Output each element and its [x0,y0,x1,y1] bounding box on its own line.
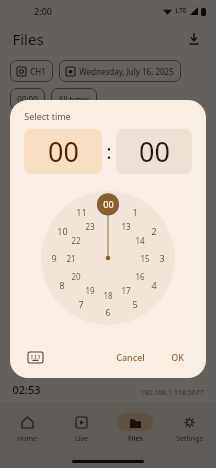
staticText: 15 [140,253,150,264]
staticText: LTE [175,6,187,16]
staticText: 20 [71,271,81,282]
staticText: Cancel [116,351,145,363]
button[interactable]: Download [184,29,204,49]
staticText: 21 [66,253,76,264]
staticText: 19 [85,285,95,296]
staticText: 13 [121,221,131,232]
button[interactable]: 21 [63,250,79,266]
staticText: 18 [103,290,113,301]
staticText: Settings [176,434,203,444]
button[interactable]: CH1 [10,60,53,82]
button[interactable]: 11 [72,203,90,221]
staticText: 23 [85,221,95,232]
button[interactable]: 1 [126,203,144,221]
button[interactable]: 4 [145,276,163,294]
button[interactable]: 7 [72,295,90,313]
staticText: 02:53 [12,382,41,397]
staticText: Live [75,434,88,444]
button[interactable]: Settings [162,411,216,446]
button[interactable]: Cancel [108,347,153,367]
button[interactable]: 23 [82,218,98,234]
button[interactable]: 00:00 [10,88,45,110]
staticText: 6 [105,306,111,318]
button[interactable]: 17 [118,282,134,298]
staticText: 1 [132,206,138,218]
button[interactable]: 6 [99,303,117,321]
staticText: Select time [24,110,71,122]
staticText: Files [128,434,143,444]
staticText: 5 [132,298,138,310]
staticText: 00 [103,198,114,210]
staticText: 2 [151,225,157,237]
staticText: 11 [76,206,87,218]
button[interactable]: 13 [118,218,134,234]
button[interactable]: 19 [82,282,98,298]
staticText: Files [12,29,44,49]
button[interactable]: 16 [132,268,148,284]
staticText: 2:00 [34,5,52,17]
staticText: 00:00 [17,94,38,105]
button[interactable]: 9 [45,249,63,267]
button[interactable]: 10 [53,222,71,240]
staticText: 192.168.1.118:5677 [140,388,204,398]
button[interactable]: 14 [132,232,148,248]
staticText: 00 [48,133,79,170]
button[interactable]: 12 [99,195,117,213]
staticText: 12 [103,198,114,210]
button[interactable]: 00 [116,129,192,174]
button[interactable]: 2 [145,222,163,240]
staticText: 10 [57,225,68,237]
button[interactable]: Live [54,411,108,446]
staticText: Home [17,434,37,444]
staticText: 22 [71,235,81,246]
button[interactable]: 22 [68,232,84,248]
button[interactable]: 8 [53,276,71,294]
staticText: All types [58,94,90,105]
staticText: OK [171,351,184,363]
button[interactable]: OK [163,347,192,367]
staticText: 8 [59,279,65,291]
button[interactable]: 18 [100,287,116,303]
button[interactable]: Home [0,411,54,446]
staticText: : [106,138,112,165]
staticText: 3 [159,252,165,264]
staticText: 9 [51,252,57,264]
staticText: 00 [139,133,170,170]
staticText: 14 [135,235,145,246]
button[interactable]: All types [51,88,97,110]
button[interactable]: Wednesday, July 16, 2025 [59,60,181,82]
button[interactable]: 3 [153,249,171,267]
button[interactable]: 20 [68,268,84,284]
staticText: Wednesday, July 16, 2025 [79,66,174,77]
staticText: 17 [121,285,131,296]
button[interactable]: Files [108,411,162,446]
button[interactable]: Switch to text input [24,346,46,368]
button[interactable]: 00 [24,129,102,174]
staticText: 4 [151,279,157,291]
staticText: 16 [135,271,145,282]
staticText: 7 [78,298,84,310]
button[interactable]: 5 [126,295,144,313]
staticText: CH1 [30,66,46,77]
button[interactable]: 00 [97,193,119,215]
button[interactable]: 15 [137,250,153,266]
